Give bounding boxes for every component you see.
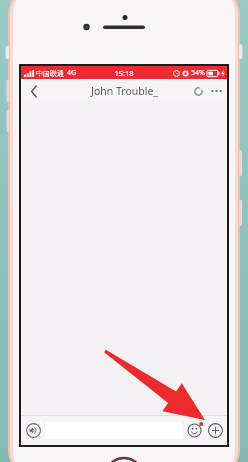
staticText: John Trouble_ [91, 84, 158, 98]
button[interactable]: Voice message [23, 420, 43, 440]
staticText: 15:18 [114, 68, 134, 78]
button[interactable]: Emoji [185, 420, 205, 440]
staticText: 54% [191, 68, 205, 78]
staticText: 中国联通 [36, 69, 64, 78]
staticText: 4G [67, 68, 77, 78]
button[interactable]: More options [207, 82, 225, 100]
button[interactable]: More functions [205, 420, 225, 440]
button[interactable]: Loading [189, 82, 207, 100]
button[interactable]: Back [24, 81, 44, 101]
